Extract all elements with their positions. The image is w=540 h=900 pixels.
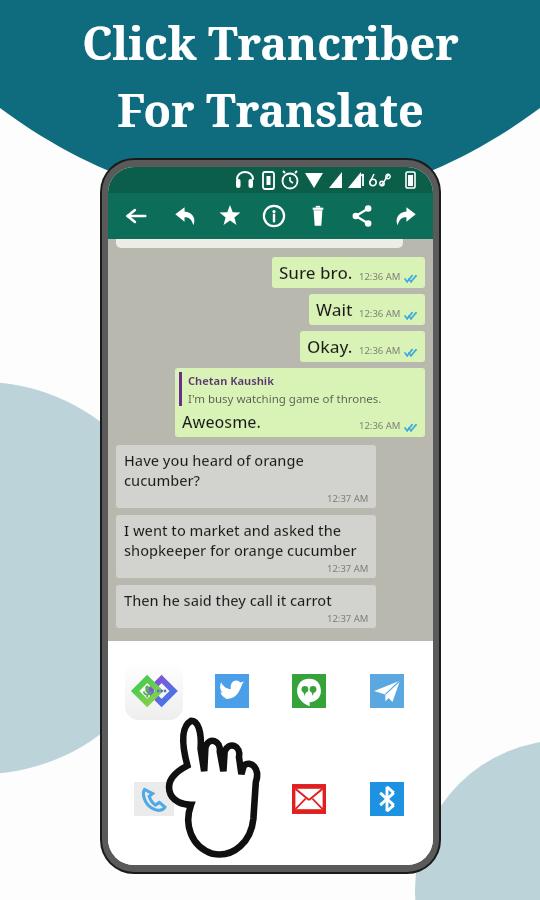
button[interactable]: Wait xyxy=(309,294,425,325)
button[interactable]: Phone xyxy=(118,763,190,835)
button[interactable]: Chetan Kaushik xyxy=(175,368,425,437)
button[interactable]: Forward xyxy=(389,193,423,239)
staticText: Aweosme. xyxy=(182,411,261,433)
staticText: Then he said they call it carrot xyxy=(124,590,332,610)
staticText: 12:36 AM xyxy=(359,307,401,320)
staticText: 12:37 AM xyxy=(327,612,369,625)
button[interactable]: I went to market and asked the xyxy=(116,515,376,578)
staticText: For Translate xyxy=(117,79,424,140)
button[interactable]: Okay. xyxy=(300,331,425,362)
staticText: 12:36 AM xyxy=(359,270,401,283)
staticText: 12:37 AM xyxy=(327,492,369,505)
staticText: Have you heard of orange cucumber? xyxy=(124,450,369,490)
button[interactable]: Twitter xyxy=(196,655,268,727)
button[interactable]: Telegram xyxy=(351,655,423,727)
staticText: 12:36 AM xyxy=(359,419,401,432)
staticText: I'm busy watching game of thrones. xyxy=(188,391,382,407)
button[interactable]: Email xyxy=(273,763,345,835)
button[interactable]: Sure bro. xyxy=(272,257,425,288)
staticText: I went to market and asked the xyxy=(124,520,342,540)
staticText: Click Trancriber xyxy=(82,12,459,73)
button[interactable]: Back xyxy=(118,193,153,239)
staticText: Sure bro. xyxy=(279,261,353,284)
button[interactable]: Info xyxy=(257,193,291,239)
button[interactable]: Have you heard of orange cucumber? xyxy=(116,445,376,508)
staticText: Okay. xyxy=(307,335,353,358)
button[interactable]: Contacts xyxy=(196,763,268,835)
button[interactable]: Delete xyxy=(301,193,335,239)
button[interactable]: Bluetooth xyxy=(351,763,423,835)
staticText: Chetan Kaushik xyxy=(188,373,274,388)
staticText: 12:36 AM xyxy=(359,344,401,357)
staticText: Wait xyxy=(316,298,353,321)
button[interactable]: Hangouts xyxy=(273,655,345,727)
staticText: 12:37 AM xyxy=(327,562,369,575)
button[interactable]: Transcriber xyxy=(118,655,190,727)
button[interactable]: Share xyxy=(345,193,379,239)
button[interactable]: Star xyxy=(212,193,247,239)
button[interactable]: Reply xyxy=(167,193,202,239)
staticText: shopkeeper for orange cucumber xyxy=(124,540,357,560)
button[interactable]: Then he said they call it carrot xyxy=(116,585,376,628)
